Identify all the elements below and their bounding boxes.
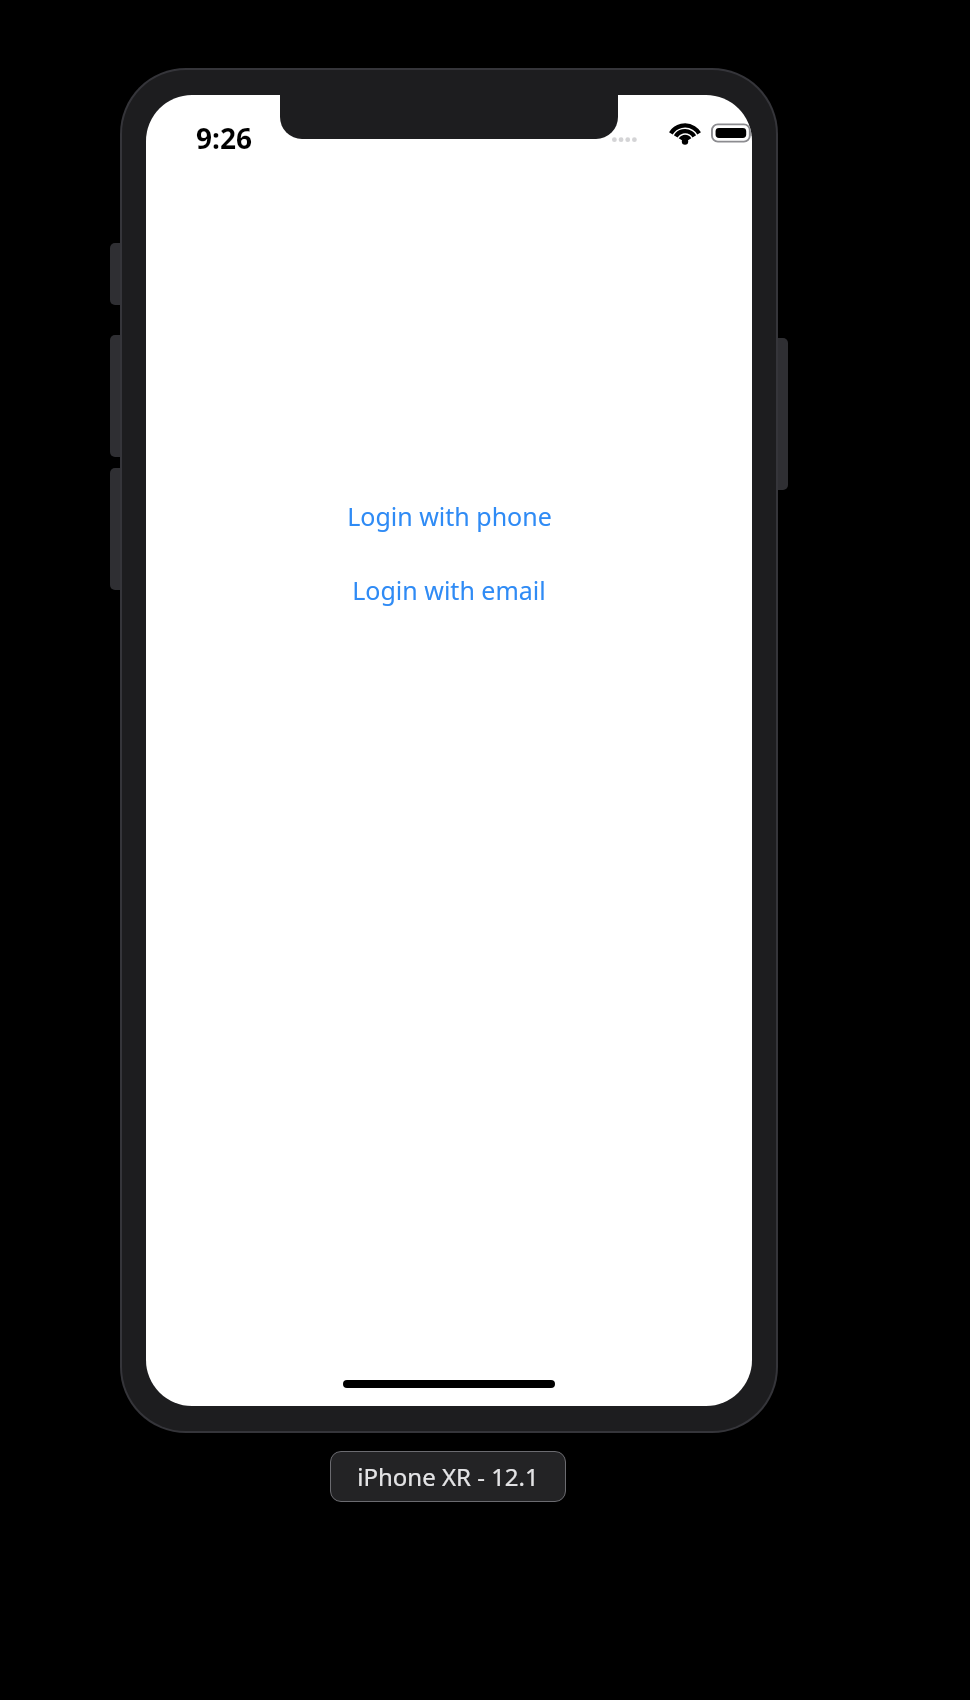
other: Cellular signal [612,121,658,145]
button[interactable]: Login with phone [333,492,566,540]
staticText: iPhone XR - 12.1 [357,1460,539,1493]
staticText: Login with phone [347,499,552,533]
button[interactable]: Login with email [338,566,560,614]
other: Home indicator [343,1380,555,1388]
button[interactable]: iPhone XR - 12.1 [330,1451,566,1502]
staticText: 9:26 [196,119,252,157]
other: Battery full [711,121,752,145]
other: Wi-Fi [668,121,702,145]
staticText: Login with email [352,573,546,607]
